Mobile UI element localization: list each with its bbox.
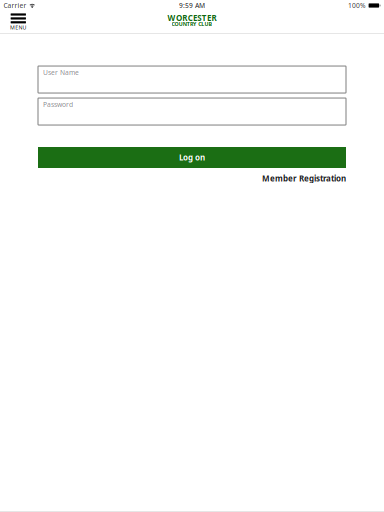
button[interactable]: Member Registration [262, 172, 346, 185]
button[interactable]: Log on [38, 147, 346, 168]
staticText: MENU [10, 24, 27, 31]
staticText: Carrier [3, 1, 26, 10]
button[interactable]: Password [38, 98, 346, 125]
staticText: 9:59 AM [179, 1, 205, 10]
button[interactable]: Menu [6, 11, 31, 32]
staticText: Member Registration [262, 173, 346, 184]
button[interactable]: User Name [38, 66, 346, 93]
staticText: Log on [179, 152, 205, 163]
staticText: COUNTRY CLUB [171, 20, 212, 28]
staticText: WORCESTER [168, 13, 216, 23]
staticText: 100% [348, 1, 366, 10]
staticText: User Name [43, 68, 79, 77]
staticText: Password [43, 100, 73, 109]
